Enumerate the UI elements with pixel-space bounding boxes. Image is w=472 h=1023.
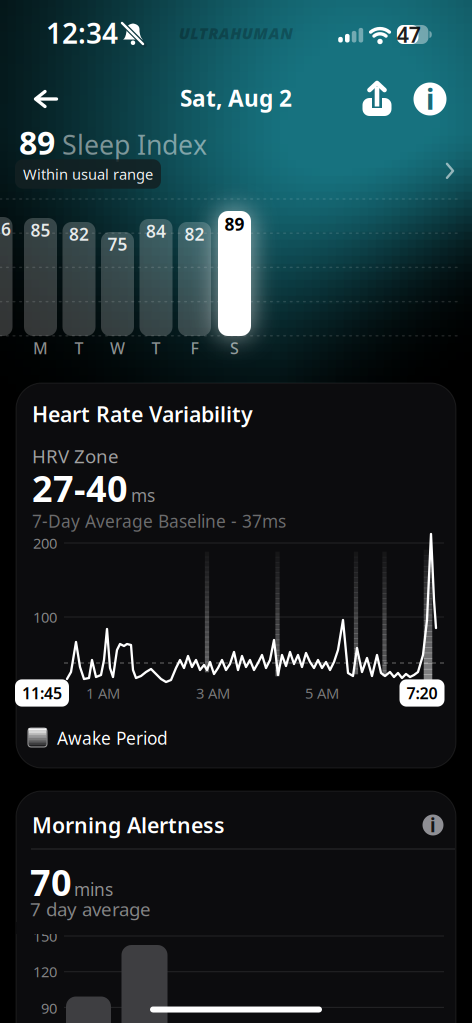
staticText: 85	[30, 218, 50, 241]
staticText: 7-Day Average Baseline - 37ms	[32, 509, 286, 532]
staticText: M	[33, 337, 48, 359]
staticText: 82	[184, 222, 204, 245]
staticText: 150	[33, 926, 57, 946]
staticText: T	[151, 337, 160, 359]
button[interactable]: Info	[416, 808, 450, 842]
staticText: Within usual range	[23, 164, 153, 184]
staticText: 82	[69, 222, 89, 245]
staticText: F	[190, 337, 198, 359]
staticText: ULTRAHUMAN	[179, 22, 293, 44]
staticText: i	[426, 80, 434, 118]
button[interactable]: Info	[408, 77, 452, 121]
staticText: 12:34	[46, 14, 118, 52]
staticText: 11:45	[22, 682, 62, 704]
staticText: i	[430, 813, 436, 837]
staticText: 84	[146, 219, 166, 242]
staticText: 5 AM	[305, 683, 339, 703]
staticText: 89	[19, 121, 55, 164]
staticText: 120	[33, 962, 57, 981]
staticText: 200	[33, 533, 57, 553]
staticText: 1 AM	[86, 683, 120, 703]
staticText: HRV Zone	[32, 444, 119, 468]
staticText: 7 day average	[30, 897, 151, 921]
staticText: Heart Rate Variability	[32, 400, 253, 428]
staticText: Morning Alertness	[32, 811, 225, 839]
staticText: 3 AM	[196, 683, 230, 703]
staticText: Awake Period	[57, 726, 168, 749]
staticText: mins	[74, 878, 113, 901]
staticText: 70	[30, 858, 72, 906]
staticText: T	[74, 337, 83, 359]
staticText: 90	[41, 998, 57, 1018]
staticText: ms	[131, 484, 155, 507]
staticText: 6	[1, 217, 11, 240]
button[interactable]: Share	[355, 77, 399, 121]
staticText: W	[110, 337, 125, 359]
staticText: 89	[224, 212, 244, 235]
staticText: S	[230, 337, 239, 359]
staticText: Sleep Index	[62, 127, 207, 162]
button[interactable]: 89	[0, 129, 472, 163]
staticText: 7:20	[406, 682, 437, 704]
button[interactable]: Back	[24, 77, 68, 121]
staticText: 47	[397, 20, 421, 49]
staticText: 100	[33, 607, 57, 627]
staticText: Sat, Aug 2	[180, 83, 292, 113]
staticText: 27-40	[32, 464, 128, 512]
staticText: 75	[107, 232, 127, 255]
